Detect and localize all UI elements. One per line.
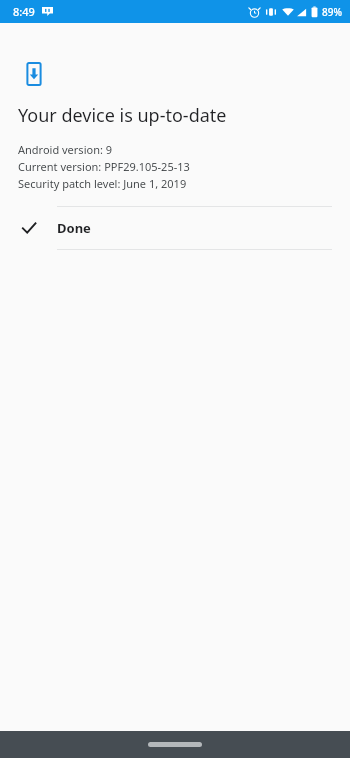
button[interactable]: Home gesture handle [148, 742, 202, 747]
staticText: Current version: PPF29.105-25-13 [18, 159, 190, 174]
staticText: 89% [322, 5, 342, 19]
other: System update [24, 62, 44, 86]
staticText: 8:49 [13, 4, 35, 19]
staticText: Your device is up-to-date [18, 103, 227, 128]
staticText: Done [57, 219, 91, 237]
button[interactable]: Done [0, 207, 350, 249]
staticText: Security patch level: June 1, 2019 [18, 176, 187, 191]
staticText: Android version: 9 [18, 142, 113, 157]
